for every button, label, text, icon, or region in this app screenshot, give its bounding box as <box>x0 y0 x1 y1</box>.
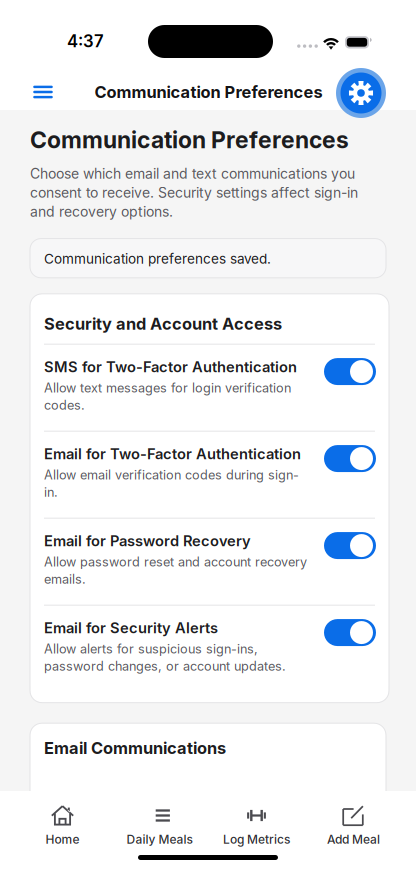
button[interactable]: Email for Two-Factor Authentication <box>30 432 389 518</box>
staticText: Home <box>45 832 79 846</box>
button[interactable]: Add Meal <box>305 804 402 846</box>
button[interactable]: Menu <box>22 71 64 113</box>
button[interactable]: Email for Security Alerts <box>30 606 389 692</box>
staticText: Email for Two-Factor Authentication <box>44 445 301 463</box>
staticText: Add Meal <box>327 832 380 846</box>
staticText: Daily Meals <box>126 832 192 846</box>
staticText: Email for Security Alerts <box>44 619 218 637</box>
staticText: Security and Account Access <box>44 314 282 334</box>
staticText: Allow alerts for suspicious sign-ins, pa… <box>44 641 286 674</box>
staticText: Communication Preferences <box>94 82 322 102</box>
staticText: Communication preferences saved. <box>44 251 271 267</box>
button[interactable]: SMS for Two-Factor Authentication <box>30 345 389 431</box>
staticText: Communication Preferences <box>30 126 349 154</box>
staticText: Allow email verification codes during si… <box>44 467 299 500</box>
staticText: Allow password reset and account recover… <box>44 554 307 587</box>
button[interactable]: Email for Password Recovery <box>30 519 389 605</box>
button[interactable]: Log Metrics <box>208 804 305 846</box>
button[interactable]: Settings <box>335 67 387 119</box>
staticText: Choose which email and text communicatio… <box>30 165 358 220</box>
button[interactable]: Home <box>14 804 111 846</box>
staticText: Email for Password Recovery <box>44 532 251 550</box>
staticText: Allow text messages for login verificati… <box>44 380 291 413</box>
staticText: Email Communications <box>44 738 226 758</box>
staticText: 4:37 <box>67 31 104 51</box>
staticText: SMS for Two-Factor Authentication <box>44 358 297 376</box>
button[interactable]: Daily Meals <box>111 804 208 846</box>
staticText: Log Metrics <box>223 832 290 846</box>
